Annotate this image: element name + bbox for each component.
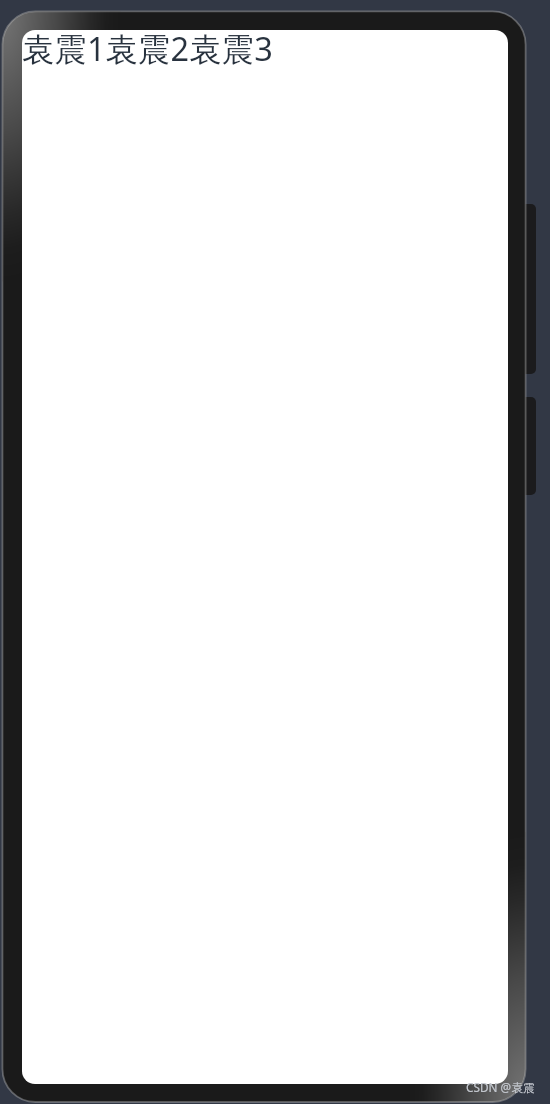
other: App screen	[22, 30, 508, 1084]
staticText: CSDN @袁震	[466, 1079, 535, 1095]
staticText: 袁震1袁震2袁震3	[22, 30, 273, 70]
button[interactable]: 袁震1袁震2袁震3	[22, 30, 508, 74]
